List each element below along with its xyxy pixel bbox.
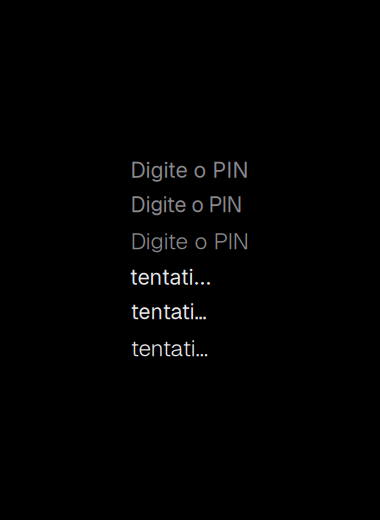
staticText: tentati… [130,333,208,363]
staticText: tentati… [130,298,206,325]
staticText: Digite o PIN [130,191,242,218]
staticText: Digite o PIN [130,226,249,256]
staticText: Digite o PIN [130,157,248,183]
staticText: tentati… [130,264,211,290]
